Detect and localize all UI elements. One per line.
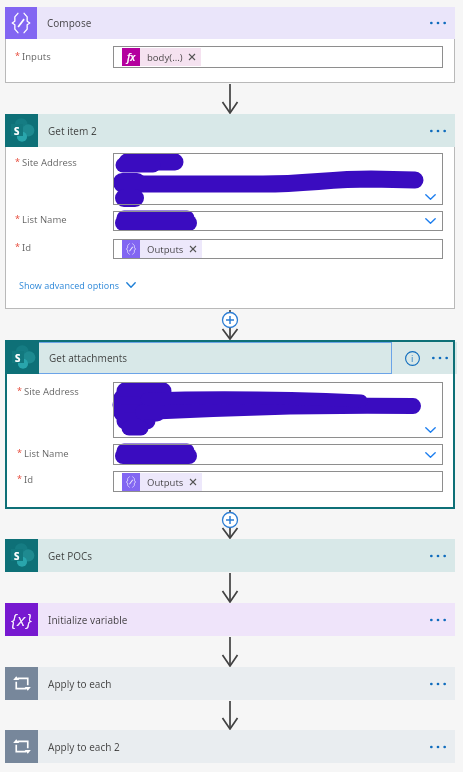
button[interactable]: Information	[398, 344, 426, 372]
staticText: {x}	[11, 608, 33, 631]
button[interactable]: {x}	[5, 603, 455, 636]
staticText: body(...)	[147, 51, 183, 64]
staticText: Apply to each	[48, 677, 424, 691]
button[interactable]: Outputs	[122, 240, 202, 258]
staticText: Apply to each 2	[48, 740, 424, 754]
button[interactable]	[113, 382, 443, 438]
button[interactable]: Apply to each 2	[5, 730, 455, 763]
staticText: *	[15, 49, 20, 61]
staticText: Outputs	[147, 476, 184, 489]
staticText: *	[15, 155, 20, 167]
staticText: List Name	[24, 447, 69, 460]
staticText: Get item 2	[48, 124, 424, 138]
staticText: *	[17, 446, 22, 458]
staticText: Site Address	[24, 385, 79, 398]
button[interactable]: More options	[426, 344, 454, 372]
staticText: S	[14, 124, 20, 136]
button[interactable]	[113, 444, 443, 465]
button[interactable]: S	[5, 114, 455, 147]
button[interactable]: fx	[122, 48, 201, 66]
staticText: Get POCs	[48, 549, 424, 563]
button[interactable]: fx	[113, 46, 443, 68]
staticText: Get attachments	[49, 351, 398, 365]
staticText: Site Address	[22, 156, 77, 169]
button[interactable]: More options	[424, 670, 452, 698]
button[interactable]: S	[5, 539, 455, 572]
staticText: *	[15, 240, 20, 252]
staticText: Id	[22, 241, 32, 254]
staticText: List Name	[22, 213, 67, 226]
staticText: *	[15, 212, 20, 224]
button[interactable]: More options	[424, 606, 452, 634]
button[interactable]: Apply to each	[5, 667, 455, 700]
staticText: Show advanced options	[19, 279, 120, 291]
staticText: S	[14, 549, 20, 561]
staticText: fx	[127, 50, 136, 64]
button[interactable]: Compose	[5, 7, 455, 39]
button[interactable]: Show advanced options	[15, 275, 140, 295]
staticText: Compose	[47, 16, 424, 30]
button[interactable]	[113, 153, 443, 205]
button[interactable]	[113, 211, 443, 231]
staticText: Outputs	[147, 243, 184, 256]
staticText: Id	[24, 473, 34, 486]
button[interactable]: More options	[424, 9, 452, 37]
button[interactable]: More options	[424, 542, 452, 570]
button[interactable]: More options	[424, 733, 452, 761]
button[interactable]: S	[7, 342, 457, 374]
button[interactable]: Outputs	[113, 239, 443, 259]
staticText: *	[17, 384, 22, 396]
staticText: S	[15, 351, 21, 363]
button[interactable]: Outputs	[113, 471, 443, 492]
staticText: Initialize variable	[48, 613, 424, 627]
staticText: *	[17, 472, 22, 484]
button[interactable]: Outputs	[122, 473, 202, 491]
staticText: Inputs	[22, 50, 51, 63]
button[interactable]: More options	[424, 117, 452, 145]
staticText: i	[411, 352, 414, 364]
